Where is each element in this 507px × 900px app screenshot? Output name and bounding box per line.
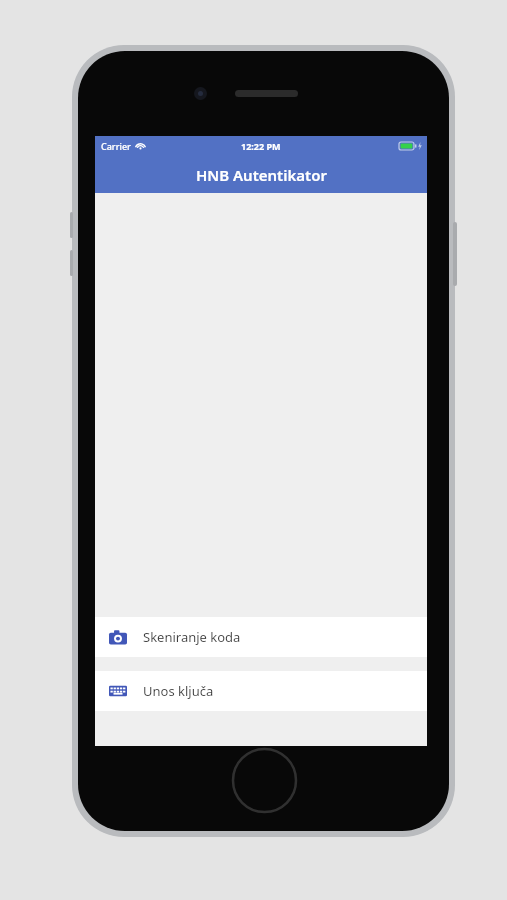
button[interactable]: Enter key	[95, 671, 427, 711]
staticText: 12:22 PM	[241, 140, 281, 152]
other: Enter key	[109, 684, 127, 698]
button[interactable]: Scan code	[95, 617, 427, 657]
staticText: HNB Autentikator	[196, 165, 327, 185]
staticText: Carrier	[101, 140, 131, 152]
other: Scan code	[109, 628, 127, 646]
staticText: Unos ključa	[143, 682, 214, 700]
staticText: Skeniranje koda	[143, 628, 241, 646]
